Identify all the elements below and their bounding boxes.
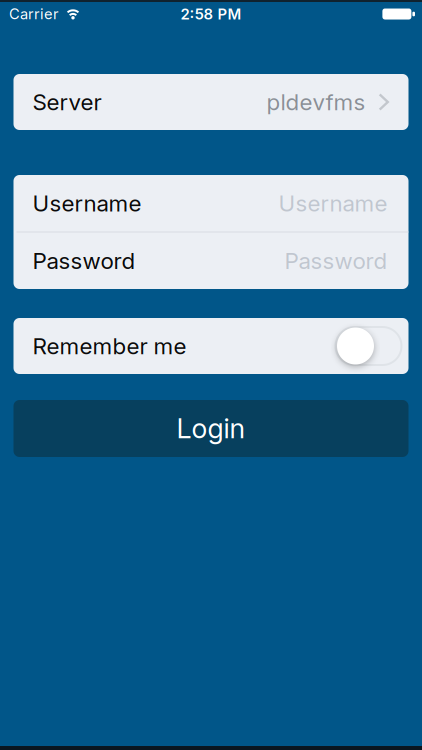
button[interactable]: Login [13,400,408,457]
button[interactable]: Server [13,74,408,130]
button[interactable]: Username [13,175,408,231]
staticText: Username [278,190,387,217]
staticText: Password [284,247,387,274]
staticText: Carrier [9,5,59,23]
button[interactable]: Remember me [335,327,401,365]
staticText: Username [32,190,141,217]
staticText: Server [32,88,101,116]
staticText: Remember me [32,332,186,360]
staticText: Login [176,412,245,445]
button[interactable]: Password [13,232,408,289]
staticText: 2:58 PM [180,5,241,23]
staticText: pldevfms [266,88,365,116]
staticText: Password [32,247,135,274]
